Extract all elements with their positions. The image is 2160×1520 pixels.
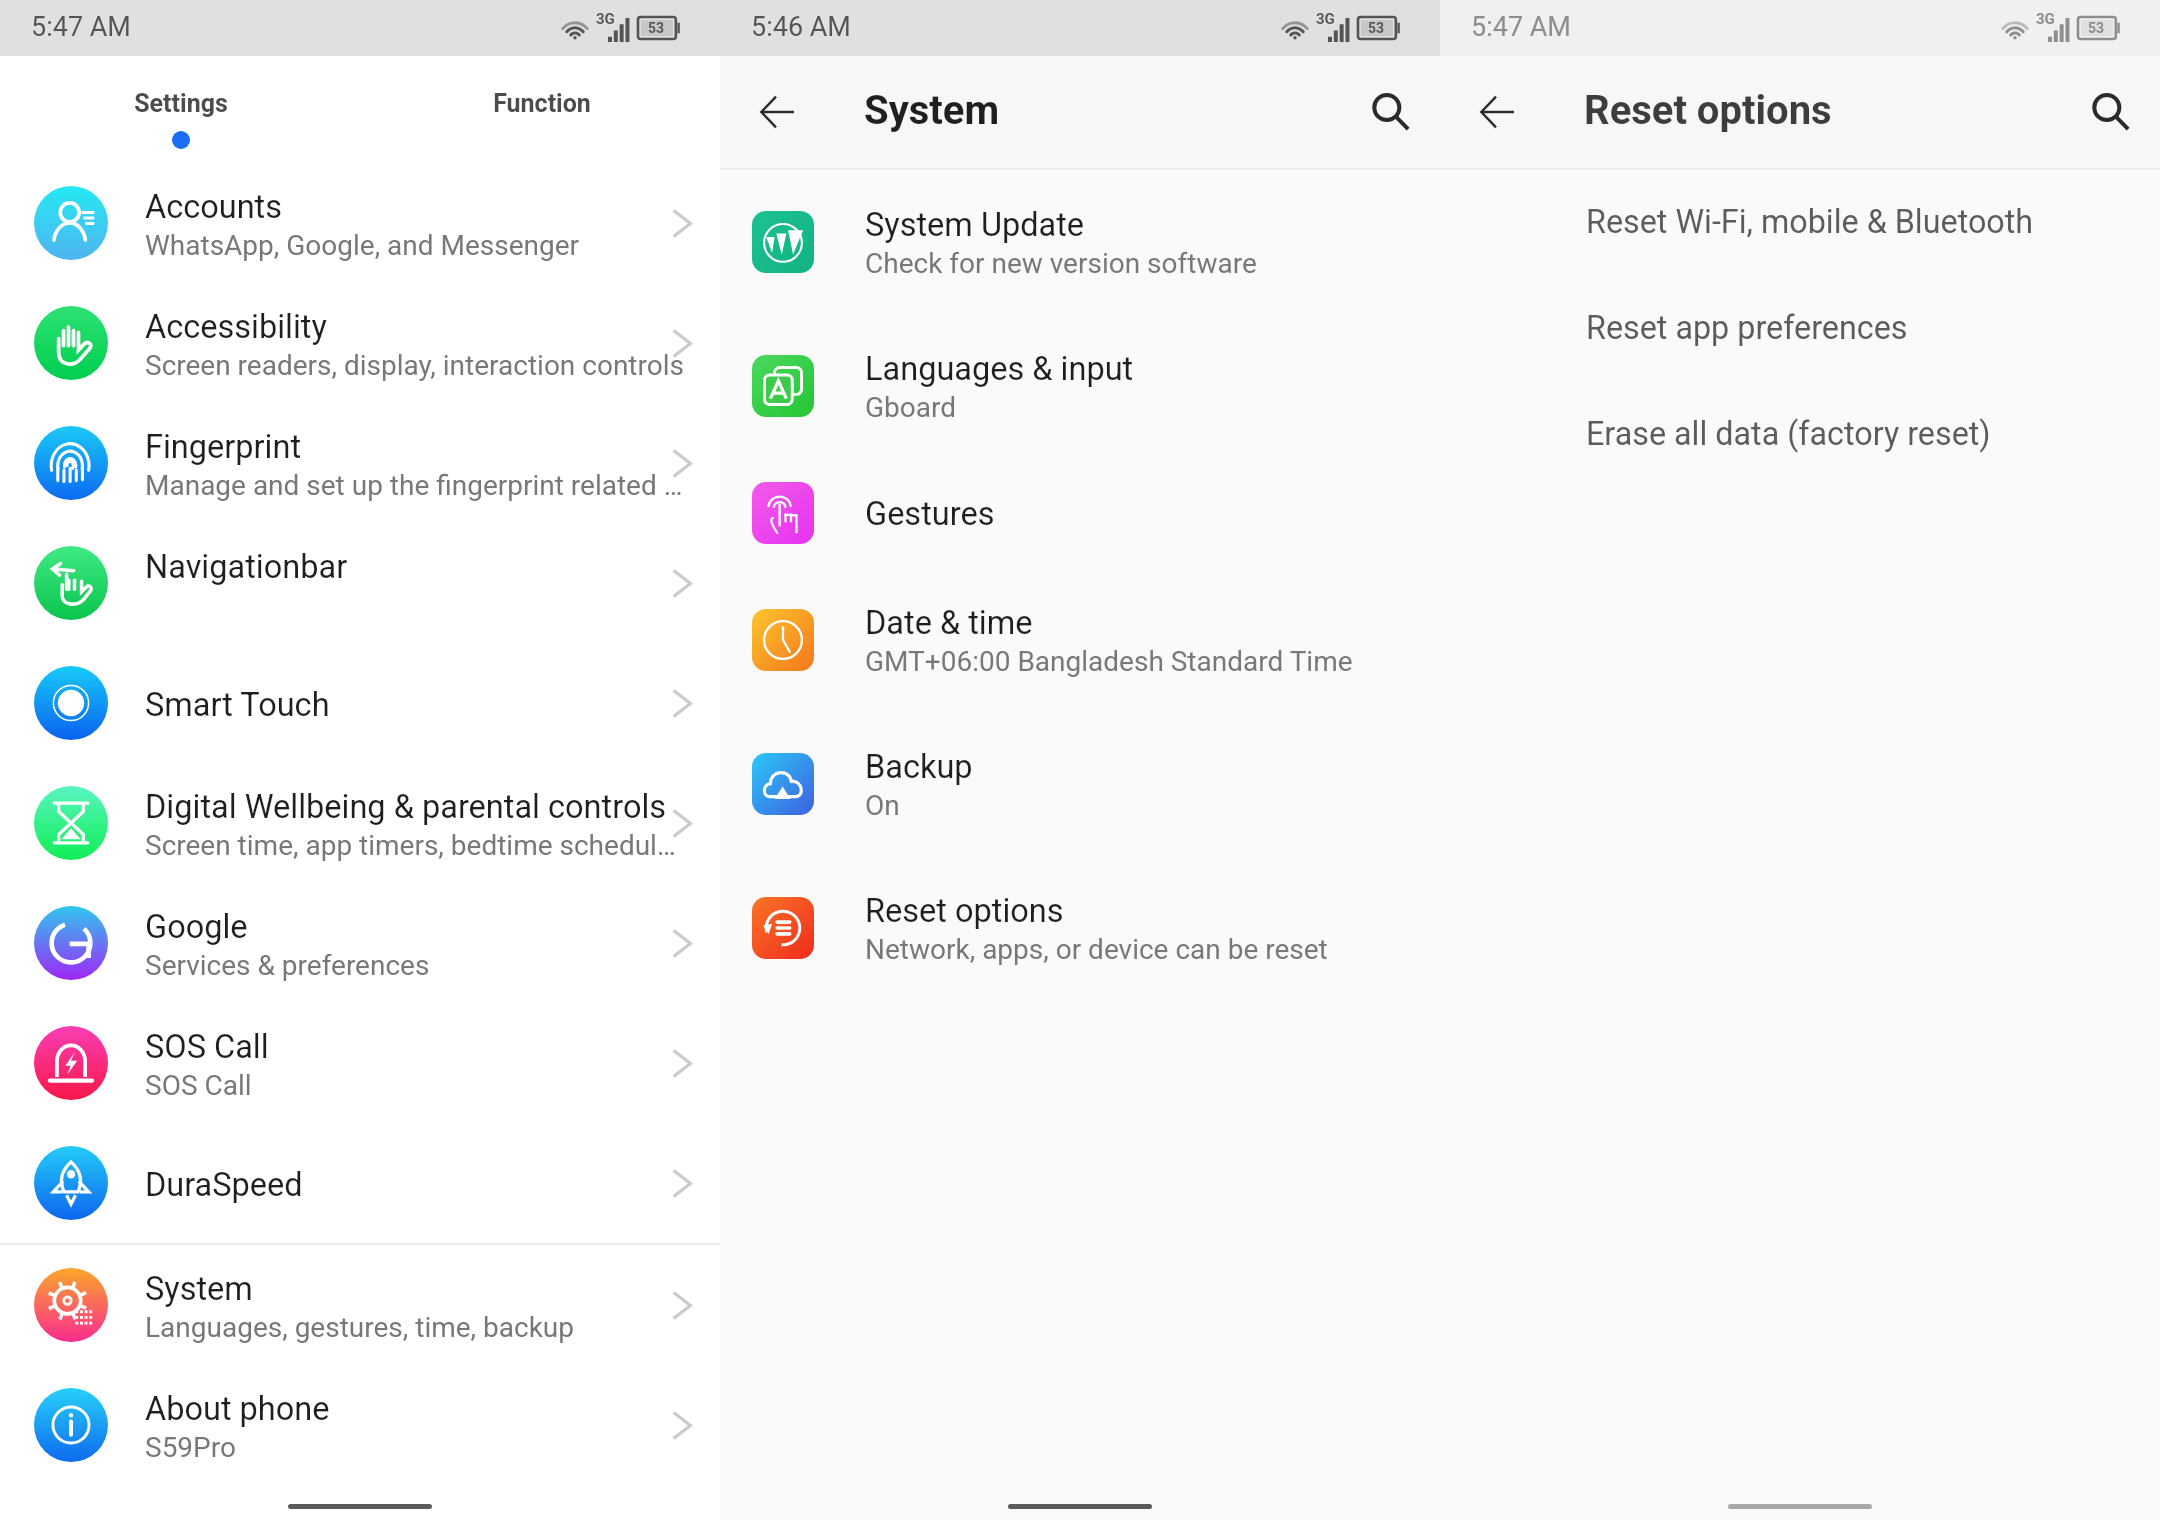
staticText: SOS Call (145, 1028, 269, 1066)
button[interactable]: Settings (121, 89, 241, 149)
button[interactable]: System Update (720, 170, 1440, 314)
staticText: System (145, 1270, 253, 1308)
staticText: Backup (865, 748, 973, 786)
staticText: Digital Wellbeing & parental controls (145, 788, 667, 826)
button[interactable]: Smart Touch (0, 643, 720, 763)
staticText: Reset Wi-Fi, mobile & Bluetooth (1586, 203, 2034, 241)
staticText: On (865, 789, 900, 822)
staticText: About phone (145, 1390, 330, 1428)
button[interactable]: DuraSpeed (0, 1123, 720, 1243)
staticText: Fingerprint (145, 428, 302, 466)
button[interactable]: Erase all data (factory reset) (1440, 382, 2160, 488)
button[interactable]: Back (1468, 83, 1526, 141)
button[interactable]: Accessibility (0, 283, 720, 403)
staticText: Smart Touch (145, 686, 330, 724)
button[interactable]: Navigationbar (0, 523, 720, 643)
staticText: 5:47 AM (31, 11, 131, 43)
staticText: Settings (134, 89, 228, 118)
button[interactable]: Reset Wi-Fi, mobile & Bluetooth (1440, 170, 2160, 276)
staticText: System (864, 87, 1000, 134)
button[interactable]: Date & time (720, 568, 1440, 712)
staticText: Screen readers, display, interaction con… (145, 349, 684, 382)
staticText: 53 (648, 20, 665, 36)
staticText: 3G (596, 10, 615, 28)
button[interactable]: Function (482, 89, 602, 118)
staticText: Network, apps, or device can be reset (865, 933, 1328, 966)
staticText: SOS Call (145, 1069, 252, 1102)
staticText: 3G (2036, 10, 2055, 28)
button[interactable]: About phone (0, 1365, 720, 1485)
staticText: Gestures (865, 495, 995, 533)
button[interactable]: Search (2082, 83, 2140, 141)
button[interactable]: Accounts (0, 163, 720, 283)
button[interactable]: SOS Call (0, 1003, 720, 1123)
staticText: Function (482, 89, 602, 118)
staticText: WhatsApp, Google, and Messenger (145, 229, 580, 262)
staticText: 53 (1368, 20, 1385, 36)
staticText: Erase all data (factory reset) (1586, 415, 1991, 453)
staticText: Reset app preferences (1586, 309, 1908, 347)
staticText: Check for new version software (865, 247, 1257, 280)
button[interactable]: Google (0, 883, 720, 1003)
staticText: 3G (1316, 10, 1335, 28)
staticText: Services & preferences (145, 949, 430, 982)
button[interactable]: System (0, 1245, 720, 1365)
staticText: 5:47 AM (1471, 11, 1571, 43)
button[interactable]: Reset app preferences (1440, 276, 2160, 382)
staticText: Manage and set up the fingerprint relate… (145, 469, 683, 502)
button[interactable]: Search (1362, 83, 1420, 141)
staticText: Accounts (145, 188, 283, 226)
staticText: Languages, gestures, time, backup (145, 1311, 575, 1344)
button[interactable]: Languages & input (720, 314, 1440, 458)
button[interactable]: Backup (720, 712, 1440, 856)
button[interactable]: Digital Wellbeing & parental controls (0, 763, 720, 883)
staticText: S59Pro (145, 1431, 236, 1464)
staticText: DuraSpeed (145, 1166, 303, 1204)
staticText: Navigationbar (145, 548, 348, 586)
staticText: Screen time, app timers, bedtime schedul… (145, 829, 676, 862)
staticText: Gboard (865, 391, 957, 424)
button[interactable]: Back (748, 83, 806, 141)
button[interactable]: Reset options (720, 856, 1440, 1000)
staticText: Languages & input (865, 350, 1134, 388)
staticText: System Update (865, 206, 1085, 244)
staticText: Accessibility (145, 308, 327, 346)
staticText: 5:46 AM (751, 11, 851, 43)
staticText: Google (145, 908, 248, 946)
button[interactable]: Fingerprint (0, 403, 720, 523)
staticText: Reset options (865, 892, 1064, 930)
staticText: 53 (2088, 20, 2105, 36)
staticText: Date & time (865, 604, 1033, 642)
staticText: GMT+06:00 Bangladesh Standard Time (865, 645, 1353, 678)
button[interactable]: Gestures (720, 458, 1440, 568)
staticText: Reset options (1584, 87, 1832, 134)
